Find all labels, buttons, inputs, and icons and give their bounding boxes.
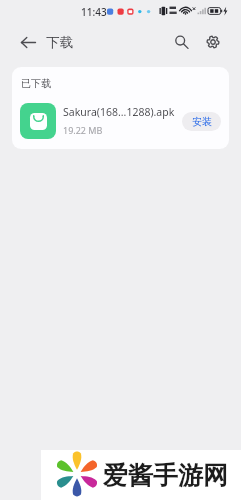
staticText: 已下载 xyxy=(21,77,51,90)
button[interactable]: Sakura(168...1288).apk xyxy=(12,98,229,142)
button[interactable]: Back xyxy=(14,28,42,56)
staticText: Sakura(168...1288).apk xyxy=(63,105,175,119)
staticText: 安装 xyxy=(192,115,212,128)
button[interactable]: 安装 xyxy=(182,112,221,131)
staticText: 11:43 xyxy=(81,5,107,19)
staticText: 下载 xyxy=(46,34,73,51)
staticText: 爱酱手游网 xyxy=(103,460,228,491)
staticText: 19.22 MB xyxy=(63,124,103,136)
button[interactable]: Settings xyxy=(199,28,227,56)
button[interactable]: Search xyxy=(167,28,195,56)
